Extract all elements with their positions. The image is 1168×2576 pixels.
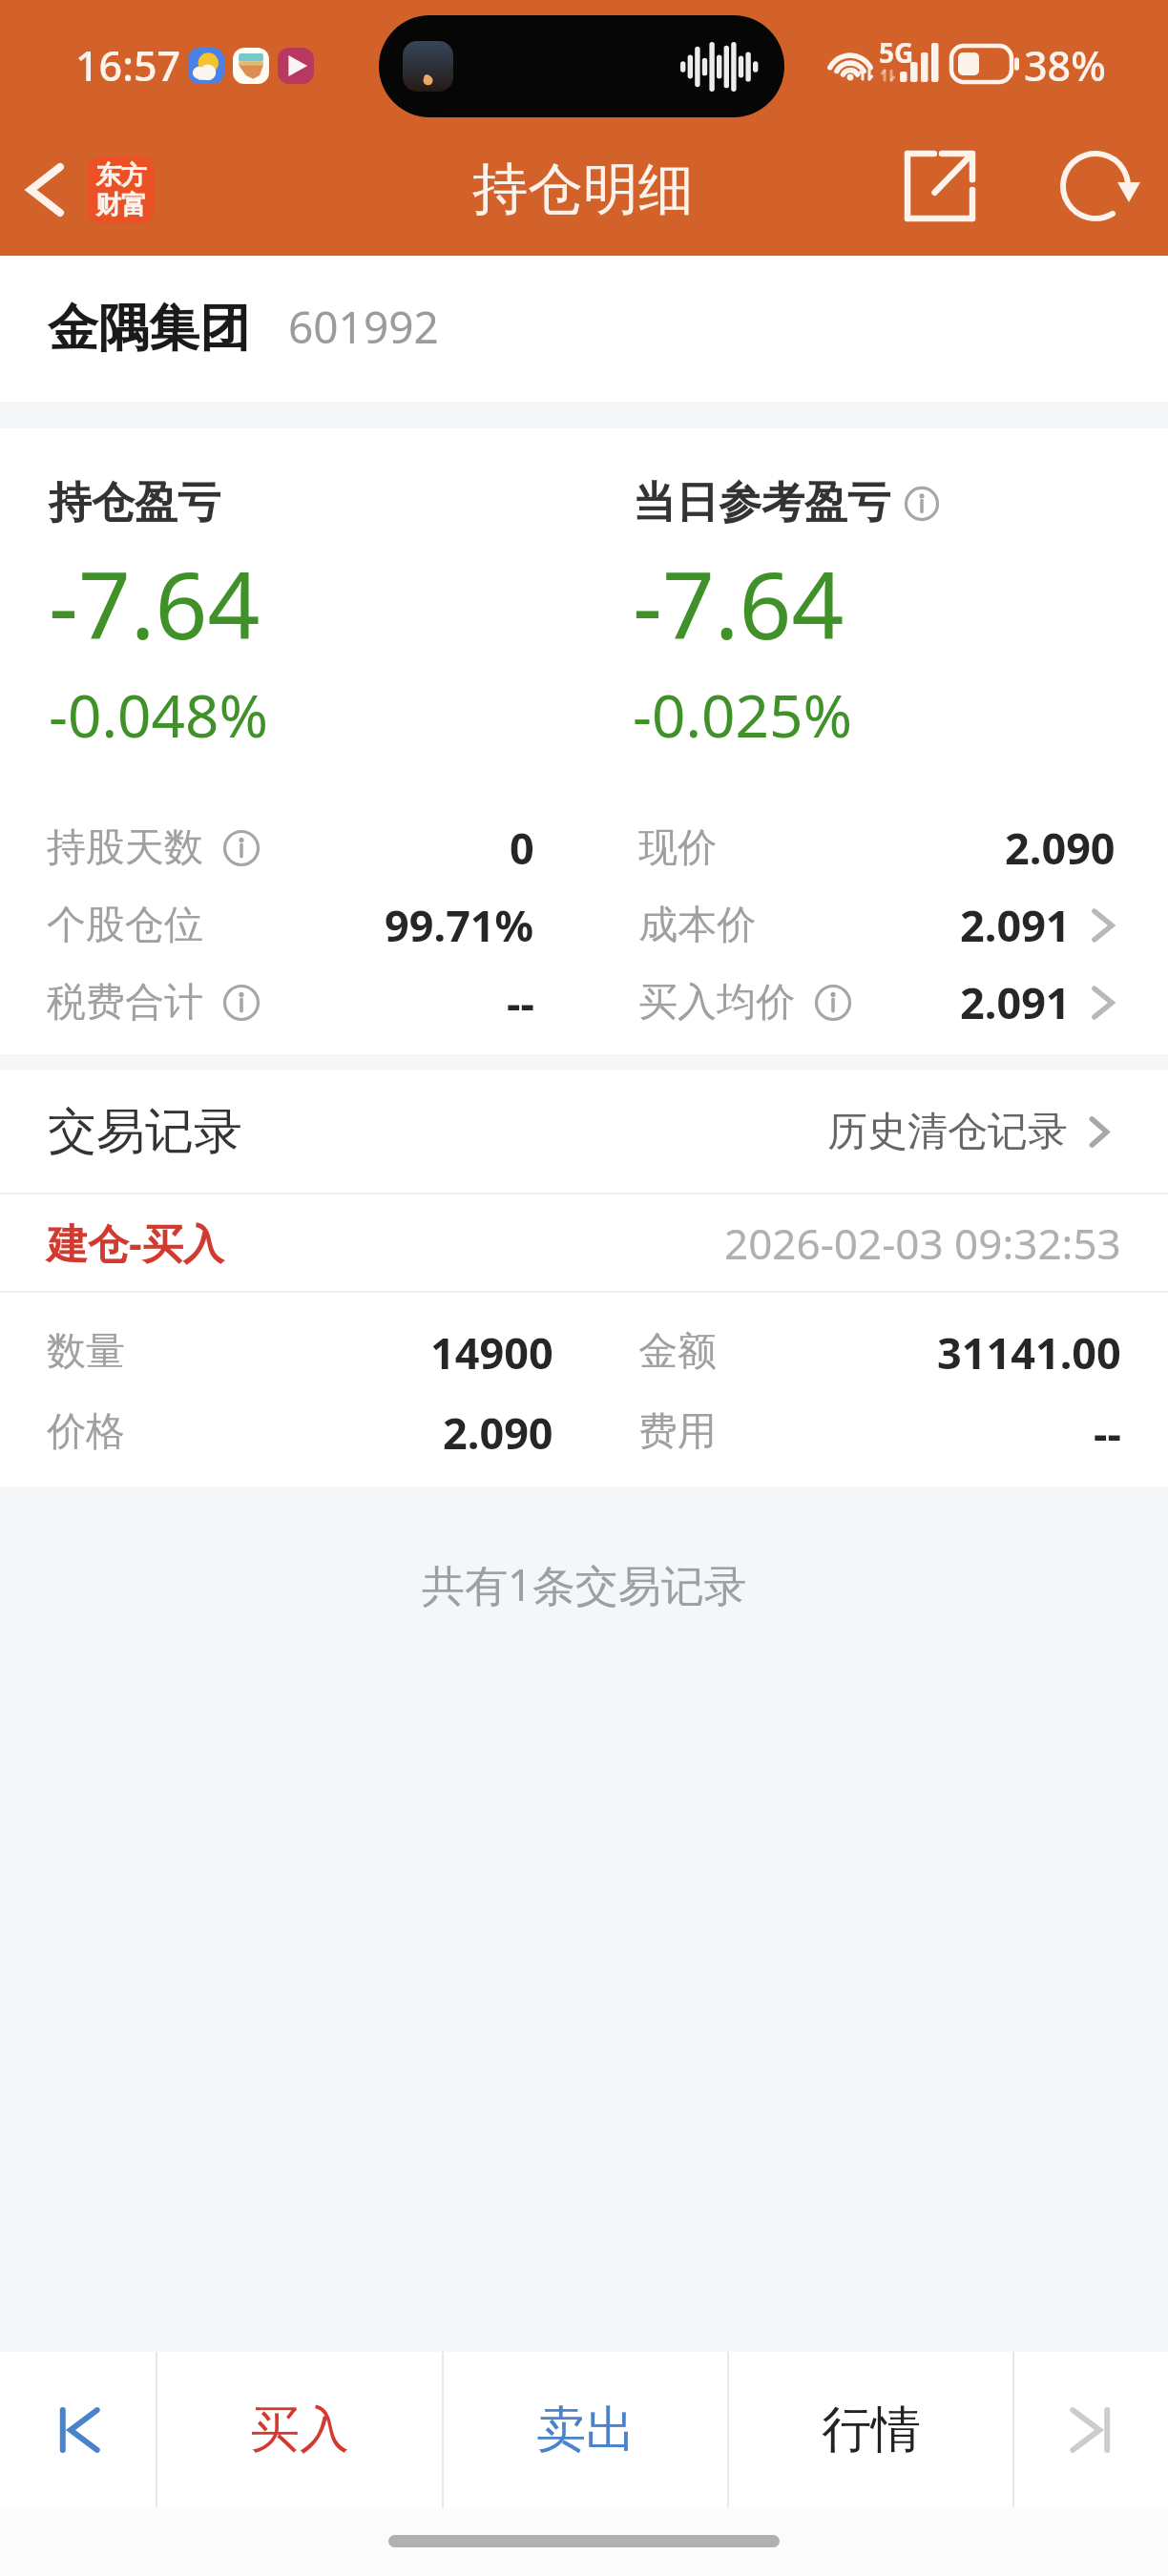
staticText: 行情 xyxy=(822,2399,921,2462)
staticText: 费用 xyxy=(638,1407,717,1457)
staticText: -- xyxy=(1094,1403,1121,1462)
staticText: 2026-02-03 09:32:53 xyxy=(724,1215,1121,1272)
staticText: 东方 财富 xyxy=(95,159,147,221)
staticText: 16:57 xyxy=(75,37,181,93)
button[interactable]: 买入 xyxy=(157,2352,442,2507)
staticText: 个股仓位 xyxy=(47,901,203,950)
staticText: 卖出 xyxy=(536,2399,636,2462)
staticText: -7.64 xyxy=(49,541,261,666)
button[interactable]: 行情 xyxy=(729,2352,1012,2507)
staticText: 数量 xyxy=(47,1327,125,1377)
staticText: 当日参考盈亏 xyxy=(633,476,890,530)
button[interactable]: 买入均价 xyxy=(638,964,1168,1041)
staticText: 31141.00 xyxy=(937,1323,1121,1381)
staticText: 金隅集团 xyxy=(48,297,250,361)
staticText: -0.025% xyxy=(633,675,852,755)
button[interactable]: First xyxy=(0,2352,156,2507)
staticText: 价格 xyxy=(47,1407,125,1457)
staticText: -7.64 xyxy=(633,541,845,666)
staticText: 税费合计 xyxy=(47,978,203,1028)
staticText: 14900 xyxy=(430,1323,553,1381)
staticText: 买入均价 xyxy=(638,978,795,1028)
staticText: 持仓明细 xyxy=(472,155,694,224)
staticText: 99.71% xyxy=(385,896,534,954)
staticText: 601992 xyxy=(288,297,439,357)
staticText: 建仓-买入 xyxy=(47,1215,224,1271)
staticText: 0 xyxy=(510,819,534,877)
button[interactable]: Last xyxy=(1014,2352,1168,2507)
staticText: 2.090 xyxy=(1005,819,1116,877)
staticText: 共有1条交易记录 xyxy=(422,1555,747,1613)
staticText: 持股天数 xyxy=(47,823,203,873)
button[interactable]: 卖出 xyxy=(444,2352,727,2507)
staticText: -0.048% xyxy=(49,675,268,755)
staticText: 历史清仓记录 xyxy=(827,1107,1068,1157)
staticText: 金额 xyxy=(638,1327,717,1377)
button[interactable]: 历史清仓记录 xyxy=(827,1107,1110,1157)
staticText: 2.090 xyxy=(443,1403,553,1462)
staticText: 现价 xyxy=(638,823,717,873)
staticText: 5G xyxy=(879,34,914,71)
staticText: 持仓盈亏 xyxy=(49,476,220,530)
other: Back xyxy=(10,137,80,242)
staticText: 买入 xyxy=(250,2399,349,2462)
button[interactable]: Refresh xyxy=(1044,135,1147,238)
button[interactable]: Back xyxy=(10,137,155,242)
staticText: 2.091 xyxy=(960,896,1071,954)
staticText: -- xyxy=(507,973,534,1031)
button[interactable]: 成本价 xyxy=(638,886,1168,964)
staticText: 成本价 xyxy=(638,901,756,950)
staticText: 2.091 xyxy=(960,973,1071,1031)
button[interactable]: Share xyxy=(888,135,991,238)
staticText: 交易记录 xyxy=(48,1101,242,1162)
staticText: 38% xyxy=(1024,37,1106,93)
